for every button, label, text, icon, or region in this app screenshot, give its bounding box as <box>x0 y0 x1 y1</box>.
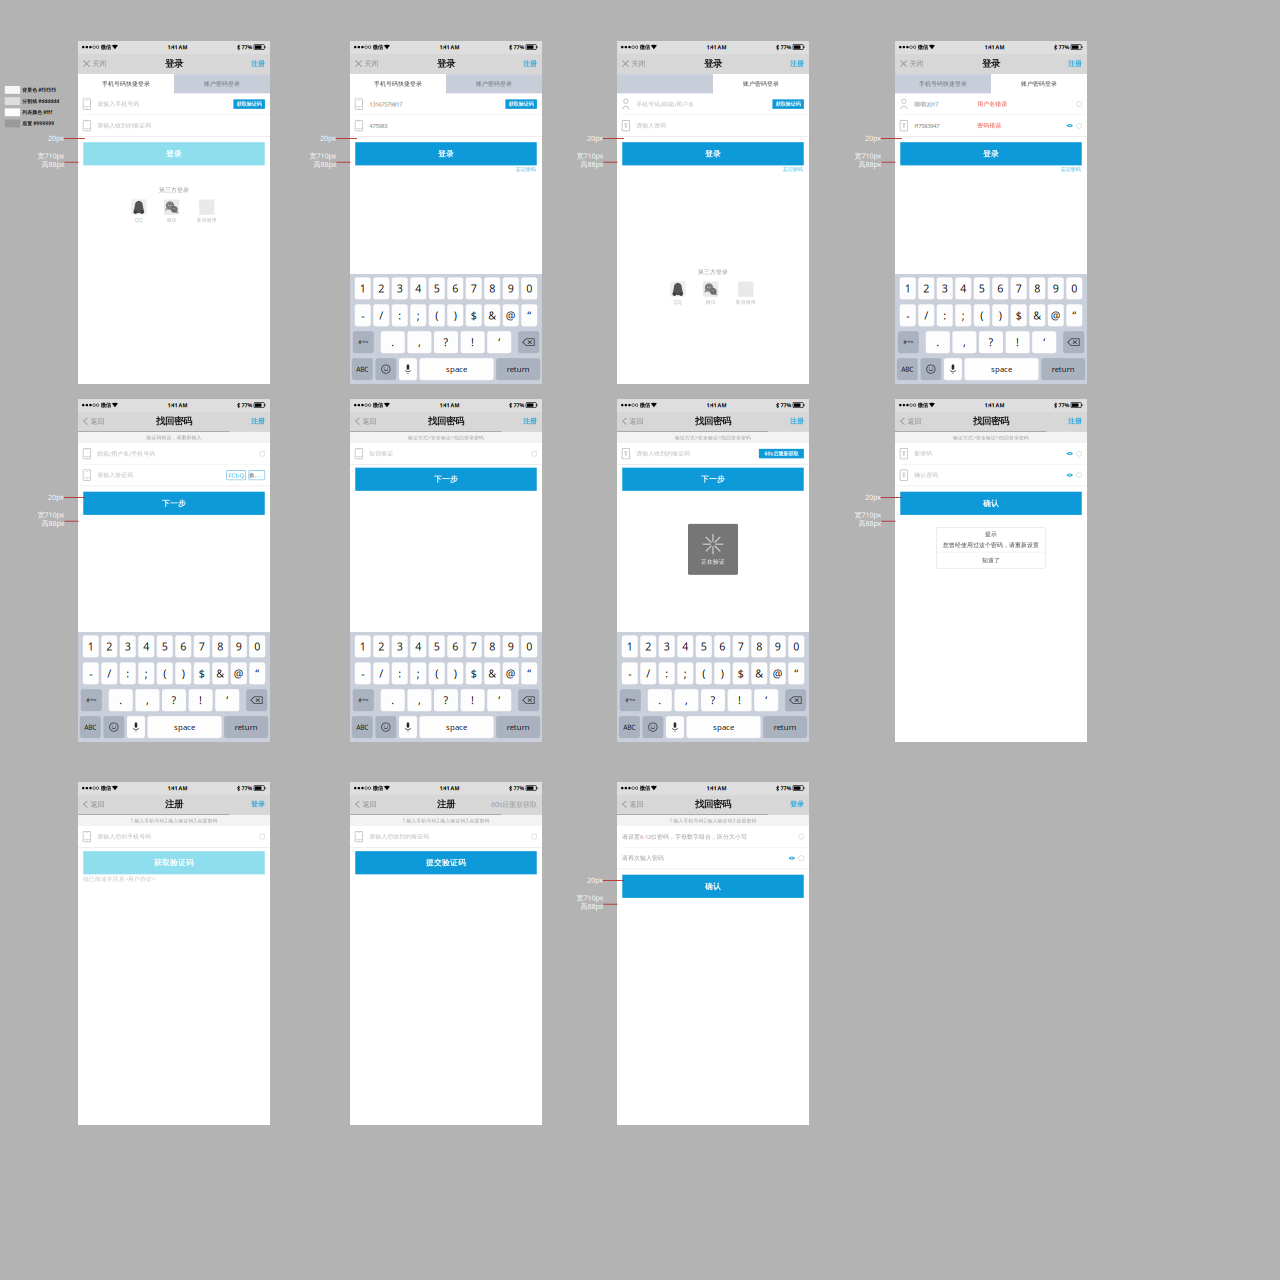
button[interactable]: - <box>355 304 371 326</box>
button[interactable]: ‘ <box>487 689 511 711</box>
button[interactable]: - <box>355 662 371 684</box>
button[interactable]: 确认 <box>622 875 804 898</box>
button[interactable]: ! <box>728 689 752 711</box>
button[interactable]: 关闭 <box>895 53 929 74</box>
button[interactable]: 0 <box>521 635 537 657</box>
button[interactable]: 关闭 <box>617 53 651 74</box>
button[interactable]: 9 <box>1048 277 1064 299</box>
button[interactable]: 登录 <box>246 794 270 814</box>
button[interactable]: 3 <box>659 635 675 657</box>
button[interactable]: 5 <box>157 635 173 657</box>
button[interactable]: 4 <box>138 635 154 657</box>
button[interactable]: 微信 <box>164 199 179 223</box>
button[interactable]: 登录 <box>900 142 1082 165</box>
button[interactable]: ! <box>1006 331 1030 353</box>
button[interactable]: 注册 <box>1063 411 1087 431</box>
button[interactable]: $ <box>1011 304 1027 326</box>
button[interactable]: 1 <box>355 635 371 657</box>
button[interactable]: 0 <box>788 635 804 657</box>
button[interactable]: ABC <box>352 358 373 380</box>
button[interactable]: 返回 <box>617 794 649 814</box>
button[interactable]: @ <box>503 662 519 684</box>
button[interactable]: 6 <box>714 635 730 657</box>
button[interactable]: & <box>484 662 500 684</box>
button[interactable]: 8 <box>751 635 767 657</box>
button[interactable]: 登录 <box>785 794 809 814</box>
button[interactable]: ABC <box>352 716 373 738</box>
button[interactable]: 4 <box>410 635 426 657</box>
button[interactable]: $ <box>466 304 482 326</box>
button[interactable]: space <box>964 358 1038 380</box>
button[interactable]: 1 <box>83 635 99 657</box>
button[interactable]: : <box>392 662 408 684</box>
button[interactable]: Emoji <box>920 358 941 380</box>
button[interactable]: / <box>373 304 389 326</box>
button[interactable]: 5 <box>429 635 445 657</box>
button[interactable]: 8 <box>484 277 500 299</box>
button[interactable]: 登录 <box>83 142 265 165</box>
button[interactable]: , <box>952 331 976 353</box>
button[interactable]: 8 <box>484 635 500 657</box>
button[interactable]: & <box>1029 304 1045 326</box>
button[interactable]: 获取验证码 <box>505 99 537 109</box>
button[interactable]: 9 <box>503 277 519 299</box>
button[interactable]: 2 <box>373 635 389 657</box>
button[interactable]: 微信 <box>703 281 718 305</box>
button[interactable]: . <box>381 331 405 353</box>
button[interactable]: 注册 <box>785 53 809 74</box>
button[interactable]: 2 <box>101 635 117 657</box>
button[interactable]: Emoji <box>375 358 396 380</box>
button[interactable]: space <box>686 716 760 738</box>
button[interactable]: 手机号码快捷登录 <box>350 74 446 94</box>
button[interactable]: 知道了 <box>937 552 1045 568</box>
button[interactable]: . <box>926 331 950 353</box>
button[interactable]: 返回 <box>895 411 927 431</box>
button[interactable]: 9 <box>231 635 247 657</box>
button[interactable]: 新浪微博 <box>736 281 756 305</box>
button[interactable]: Dictation <box>399 716 417 738</box>
button[interactable]: , <box>135 689 159 711</box>
button[interactable]: & <box>212 662 228 684</box>
button[interactable]: 注册 <box>246 411 270 431</box>
button[interactable]: 登录 <box>355 142 537 165</box>
button[interactable]: - <box>622 662 638 684</box>
button[interactable]: Dictation <box>127 716 145 738</box>
button[interactable]: ‘ <box>1032 331 1056 353</box>
button[interactable]: 4 <box>955 277 971 299</box>
button[interactable]: ( <box>974 304 990 326</box>
button[interactable]: : <box>937 304 953 326</box>
button[interactable]: return <box>496 716 540 738</box>
button[interactable]: . <box>109 689 133 711</box>
button[interactable]: , <box>407 689 431 711</box>
button[interactable] <box>617 74 713 94</box>
button[interactable]: space <box>419 716 493 738</box>
button[interactable]: 6 <box>447 277 463 299</box>
button[interactable]: “ <box>521 304 537 326</box>
button[interactable]: Delete <box>518 689 539 711</box>
button[interactable]: / <box>640 662 656 684</box>
button[interactable]: : <box>392 304 408 326</box>
button[interactable]: 注册 <box>1063 53 1087 74</box>
button[interactable]: 2 <box>640 635 656 657</box>
button[interactable]: space <box>419 358 493 380</box>
button[interactable]: ; <box>138 662 154 684</box>
button[interactable]: : <box>120 662 136 684</box>
button[interactable]: @ <box>503 304 519 326</box>
button[interactable]: Delete <box>246 689 267 711</box>
button[interactable]: 获取验证码 <box>233 99 265 109</box>
button[interactable]: ; <box>410 662 426 684</box>
button[interactable]: #+= <box>353 689 374 711</box>
button[interactable]: ? <box>162 689 186 711</box>
button[interactable]: return <box>763 716 807 738</box>
button[interactable]: Dictation <box>944 358 962 380</box>
button[interactable]: 8 <box>1029 277 1045 299</box>
button[interactable]: 0 <box>1066 277 1082 299</box>
button[interactable]: 关闭 <box>78 53 112 74</box>
button[interactable]: 账户密码登录 <box>713 74 809 94</box>
button[interactable]: 4 <box>410 277 426 299</box>
button[interactable]: ‘ <box>215 689 239 711</box>
button[interactable]: 提交验证码 <box>355 851 537 874</box>
button[interactable]: 手机号码快捷登录 <box>78 74 174 94</box>
button[interactable]: Delete <box>1063 331 1084 353</box>
button[interactable]: , <box>674 689 698 711</box>
